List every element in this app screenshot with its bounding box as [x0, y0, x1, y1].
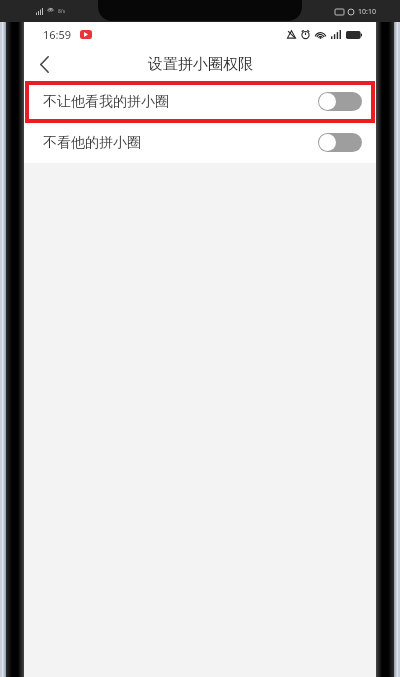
button[interactable]: 返回 — [24, 47, 64, 81]
staticText: 设置拼小圈权限 — [148, 55, 253, 74]
staticText: 不让他看我的拼小圈 — [43, 93, 169, 111]
button[interactable]: 不看他的拼小圈 — [24, 122, 376, 163]
button[interactable]: 开关 — [318, 133, 362, 152]
staticText: 16:59 — [43, 27, 72, 42]
button[interactable]: 开关 — [318, 92, 362, 111]
staticText: 10:10 — [358, 7, 376, 17]
button[interactable]: 不让他看我的拼小圈 — [24, 81, 376, 122]
staticText: 8/s — [58, 8, 66, 15]
staticText: 不看他的拼小圈 — [43, 134, 141, 152]
